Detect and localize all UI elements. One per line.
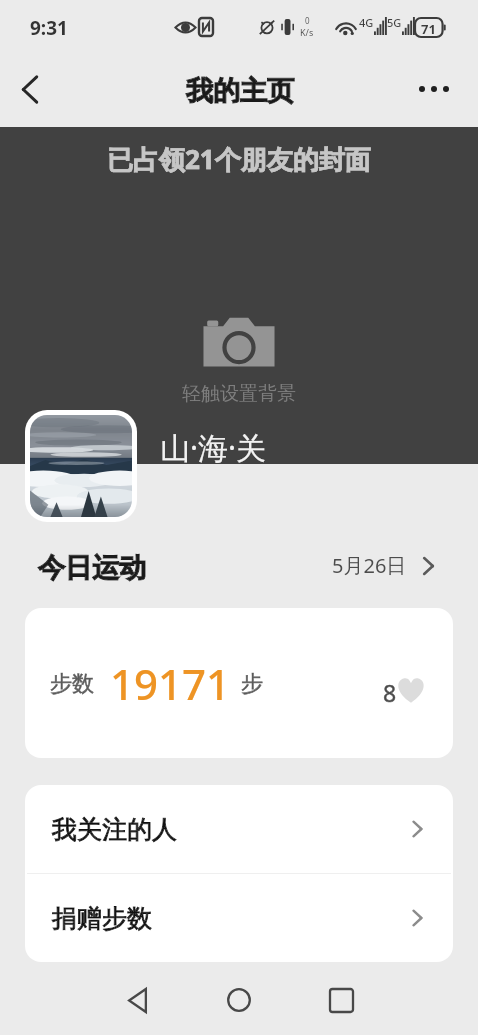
- staticText: 捐赠步数: [52, 903, 152, 934]
- staticText: 8: [383, 677, 397, 708]
- staticText: 5G: [387, 15, 402, 30]
- staticText: 4G: [359, 15, 374, 30]
- button[interactable]: 5月26日: [332, 552, 440, 579]
- staticText: 我关注的人: [52, 814, 177, 845]
- staticText: 9:31: [30, 15, 68, 41]
- staticText: 5月26日: [332, 552, 407, 579]
- staticText: 19171: [110, 655, 231, 712]
- staticText: 步数: [50, 670, 94, 698]
- staticText: 71: [421, 20, 436, 38]
- staticText: 已占领21个朋友的封面: [107, 141, 371, 177]
- button[interactable]: Back: [6, 65, 54, 113]
- button[interactable]: Set cover background: [0, 127, 478, 464]
- button[interactable]: 步数: [25, 608, 453, 758]
- staticText: 我的主页: [186, 74, 294, 108]
- staticText: 0: [305, 15, 310, 26]
- button[interactable]: Likes: [377, 668, 433, 704]
- staticText: 我关注的人: [52, 814, 177, 845]
- staticText: 捐赠步数: [52, 903, 152, 934]
- button[interactable]: More options: [410, 65, 458, 113]
- staticText: 步: [241, 670, 263, 698]
- button[interactable]: Home: [213, 974, 265, 1026]
- staticText: 步数: [50, 670, 94, 698]
- staticText: 今日运动: [38, 551, 146, 585]
- staticText: 山·海·关: [160, 427, 267, 468]
- staticText: 今日运动: [38, 551, 146, 585]
- button[interactable]: Recent apps: [315, 974, 367, 1026]
- staticText: 8: [383, 677, 397, 708]
- staticText: 已占领21个朋友的封面: [107, 141, 371, 177]
- button[interactable]: 捐赠步数: [25, 874, 453, 962]
- staticText: 步: [241, 670, 263, 698]
- staticText: 轻触设置背景: [182, 382, 296, 406]
- button[interactable]: Back: [111, 974, 163, 1026]
- button[interactable]: 我关注的人: [25, 785, 453, 873]
- staticText: 我的主页: [186, 74, 294, 108]
- staticText: K/s: [300, 26, 314, 38]
- button[interactable]: Profile photo: [30, 415, 132, 517]
